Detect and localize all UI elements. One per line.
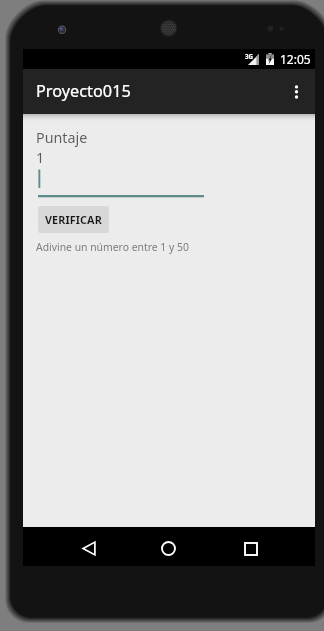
staticText: VERIFICAR [45,212,102,227]
button[interactable]: VERIFICAR [38,206,109,233]
staticText: 12:05 [280,51,311,67]
button[interactable]: Back [66,529,111,568]
staticText: Adivine un número entre 1 y 50 [36,240,189,254]
staticText: Puntaje [36,128,88,147]
staticText: 3G [245,52,254,60]
button[interactable]: Recent apps [228,529,273,568]
button[interactable]: Home [146,529,191,568]
staticText: Proyecto015 [36,80,131,102]
button[interactable]: More options [281,69,315,114]
staticText: 1 [36,148,45,167]
